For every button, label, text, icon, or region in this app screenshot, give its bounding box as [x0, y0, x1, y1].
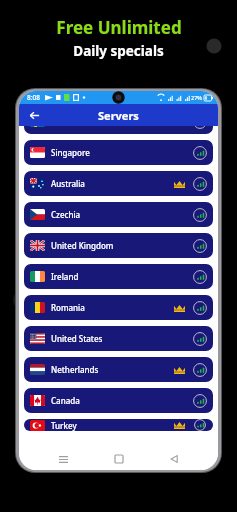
- button[interactable]: United Kingdom: [24, 233, 213, 258]
- button[interactable]: Turkey: [24, 419, 213, 431]
- staticText: Turkey: [51, 420, 77, 431]
- button[interactable]: United States: [24, 326, 213, 351]
- staticText: Australia: [51, 178, 85, 189]
- button[interactable]: Netherlands: [24, 357, 213, 382]
- staticText: Netherlands: [51, 364, 99, 375]
- staticText: Daily specials: [73, 42, 164, 60]
- staticText: Ireland: [51, 271, 79, 282]
- staticText: Czechia: [51, 209, 81, 220]
- staticText: United States: [51, 333, 103, 344]
- button[interactable]: Sweden: [24, 126, 213, 134]
- button[interactable]: Australia: [24, 171, 213, 196]
- button[interactable]: Romania: [24, 295, 213, 320]
- staticText: 27%: [191, 94, 202, 101]
- staticText: 8:08: [27, 93, 40, 102]
- staticText: Free Unlimited: [56, 16, 182, 39]
- staticText: Singapore: [51, 147, 90, 158]
- staticText: United Kingdom: [51, 240, 114, 251]
- staticText: Canada: [51, 395, 80, 406]
- button[interactable]: Back: [25, 106, 43, 124]
- button[interactable]: Czechia: [24, 202, 213, 227]
- button[interactable]: Singapore: [24, 140, 213, 165]
- button[interactable]: Recents: [52, 448, 74, 470]
- button[interactable]: Ireland: [24, 264, 213, 289]
- button[interactable]: Back: [163, 448, 185, 470]
- staticText: Servers: [98, 108, 139, 123]
- button[interactable]: Home: [108, 448, 130, 470]
- button[interactable]: Canada: [24, 388, 213, 413]
- staticText: Romania: [51, 302, 85, 313]
